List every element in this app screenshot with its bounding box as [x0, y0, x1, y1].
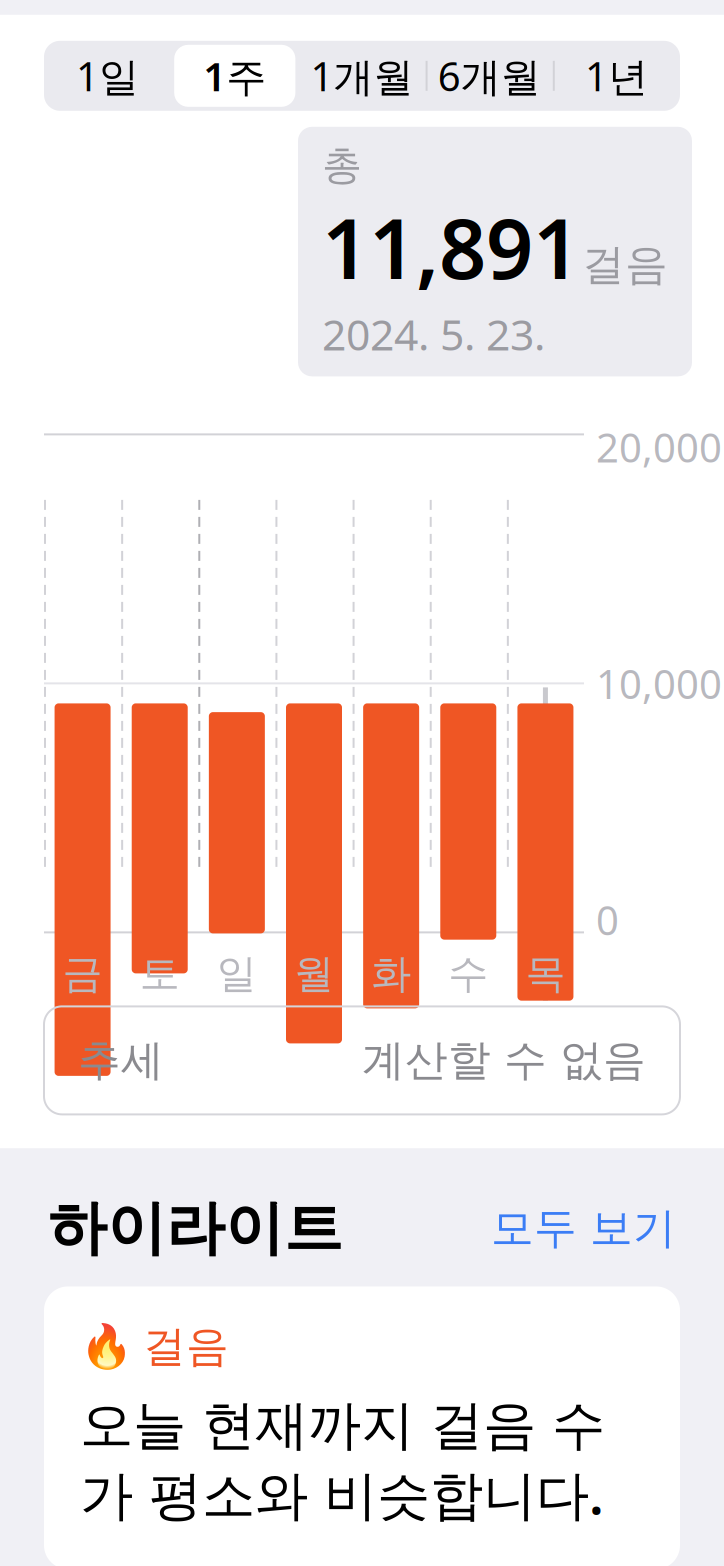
button[interactable]: 🔥	[44, 1286, 680, 1566]
staticText: 모두 보기	[491, 1202, 676, 1255]
staticText: 추세	[78, 1034, 164, 1087]
staticText: 11,891	[322, 192, 580, 302]
staticText: 목	[525, 949, 565, 998]
staticText: 걸음	[143, 1320, 229, 1373]
staticText: 1개월	[310, 49, 413, 102]
staticText: 일	[217, 949, 257, 998]
staticText: 월	[294, 949, 334, 998]
staticText: ‹	[28, 0, 53, 18]
staticText: 총	[322, 141, 362, 190]
staticText: 걸음	[582, 238, 668, 291]
staticText: 2024. 5. 23.	[322, 306, 545, 362]
staticText: 1년	[585, 49, 648, 102]
staticText: 하이라이트	[48, 1192, 343, 1264]
button[interactable]: ‹	[28, 0, 153, 26]
staticText: 계산할 수 없음	[362, 1034, 646, 1087]
button[interactable]: 1년	[553, 41, 680, 111]
button[interactable]: 6개월	[426, 41, 553, 111]
staticText: 토	[140, 949, 180, 998]
staticText: 10,000	[596, 657, 722, 710]
button[interactable]: 모두 보기	[491, 1202, 676, 1255]
staticText: 금	[63, 949, 103, 998]
button[interactable]: 1주	[171, 41, 298, 111]
staticText: 오늘 현재까지 걸음 수가 평소와 비슷합니다.	[80, 1393, 605, 1529]
staticText: 0	[596, 893, 619, 946]
staticText: 1주	[203, 49, 266, 102]
button[interactable]: 1개월	[298, 41, 426, 111]
staticText: 1일	[76, 49, 139, 102]
staticText: 6개월	[438, 49, 541, 102]
staticText: 수	[448, 949, 488, 998]
staticText: 화	[371, 949, 411, 998]
staticText: 🔥	[80, 1322, 133, 1371]
button[interactable]: 1일	[44, 41, 171, 111]
staticText: 20,000	[596, 420, 722, 473]
button[interactable]: 추세	[44, 1006, 680, 1114]
